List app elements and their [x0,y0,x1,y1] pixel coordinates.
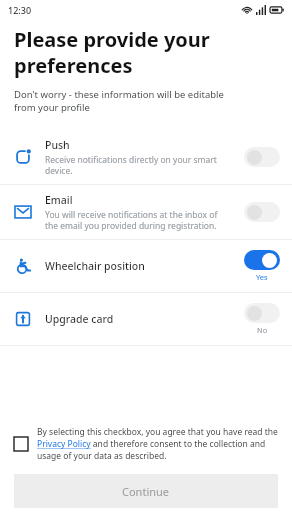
staticText: Yes [256,272,268,282]
button[interactable]: On [244,250,280,270]
button[interactable]: Off [244,147,280,167]
staticText: No [257,325,268,335]
staticText: By selecting this checkbox, you agree th… [37,426,280,462]
staticText: Continue [122,484,170,499]
button[interactable]: By selecting this checkbox, you agree th… [14,426,280,462]
button[interactable]: Email [0,185,292,239]
staticText: Wheelchair position [45,259,145,273]
staticText: Don't worry - these information will be … [14,88,224,114]
staticText: Receive notifications directly on your s… [45,154,217,176]
staticText: You will receive notifications at the in… [45,209,218,231]
button[interactable]: Wheelchair position [0,240,292,292]
staticText: Email [45,193,73,207]
button[interactable]: Push [0,130,292,184]
staticText: Upgrade card [45,312,114,326]
button[interactable]: Continue [14,474,278,508]
staticText: Push [45,138,70,152]
staticText: 12:30 [8,4,32,16]
button[interactable]: Off [244,303,280,323]
staticText: Please provide your preferences [14,26,210,79]
button[interactable]: Off [244,202,280,222]
button[interactable]: Upgrade card [0,293,292,345]
